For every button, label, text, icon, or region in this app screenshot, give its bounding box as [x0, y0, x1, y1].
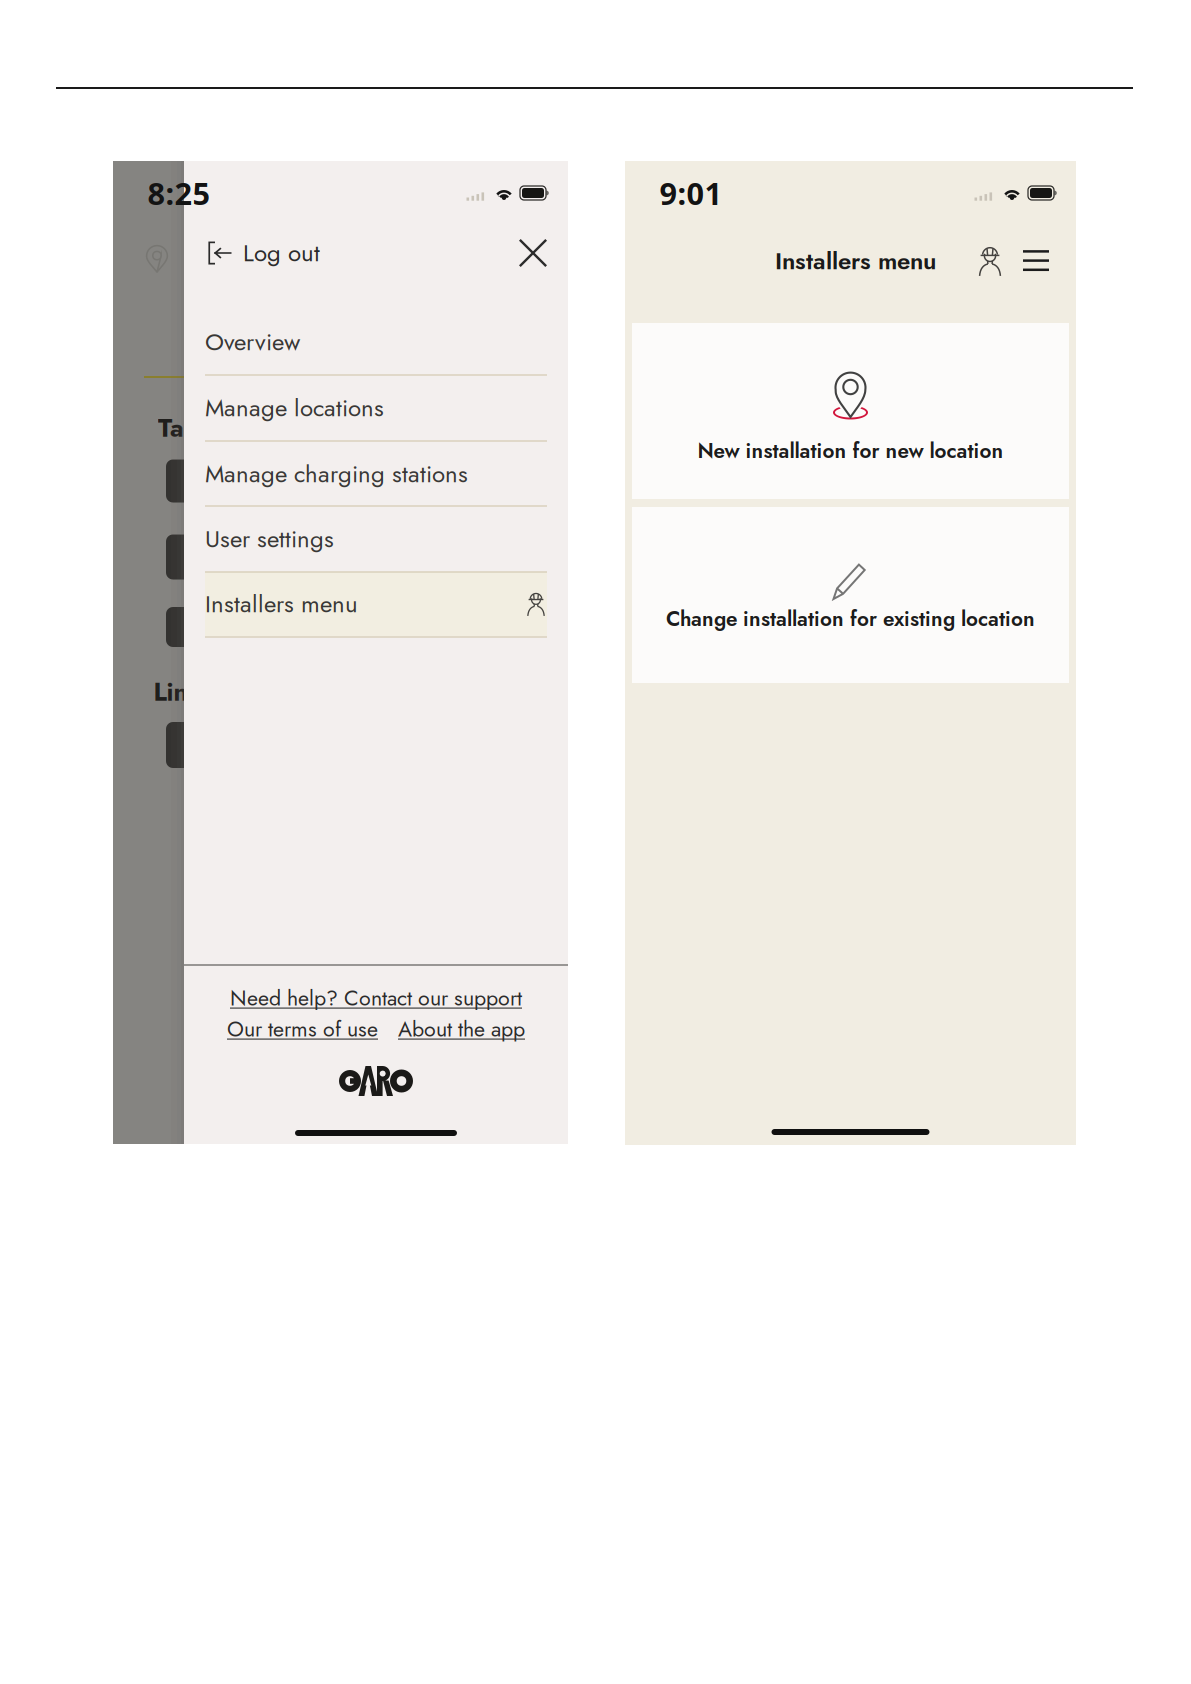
button[interactable]: Installers menu [205, 572, 547, 636]
button[interactable]: Installer profile [976, 243, 1004, 278]
staticText: Change installation for existing locatio… [666, 604, 1035, 634]
staticText: Ta [158, 410, 184, 446]
button[interactable]: Manage locations [205, 376, 547, 440]
button[interactable]: New installation for new location [632, 323, 1069, 499]
button[interactable]: User settings [205, 507, 547, 571]
button[interactable]: Manage charging stations [205, 442, 547, 506]
staticText: Manage charging stations [205, 457, 468, 491]
button[interactable]: Menu [1023, 250, 1049, 272]
staticText: Manage locations [205, 391, 384, 425]
staticText: User settings [205, 522, 334, 556]
staticText: Installers menu [775, 244, 936, 278]
staticText: Installers menu [205, 587, 358, 621]
staticText: Our terms of use [227, 1014, 378, 1044]
button[interactable]: About the app [398, 1014, 525, 1044]
staticText: About the app [398, 1014, 525, 1044]
button[interactable]: Need help? Contact our support [230, 983, 522, 1013]
button[interactable]: Close menu [519, 239, 547, 267]
staticText: Need help? Contact our support [230, 983, 522, 1013]
staticText: Overview [205, 325, 300, 359]
staticText: Log out [243, 236, 320, 270]
button[interactable]: Log out [205, 236, 320, 270]
button[interactable]: Change installation for existing locatio… [632, 507, 1069, 683]
staticText: New installation for new location [697, 436, 1003, 466]
button[interactable]: Overview [205, 310, 547, 374]
staticText: 9:01 [659, 173, 722, 213]
staticText: Lin [153, 674, 188, 710]
staticText: 8:25 [147, 173, 210, 213]
button[interactable]: Our terms of use [227, 1014, 378, 1044]
